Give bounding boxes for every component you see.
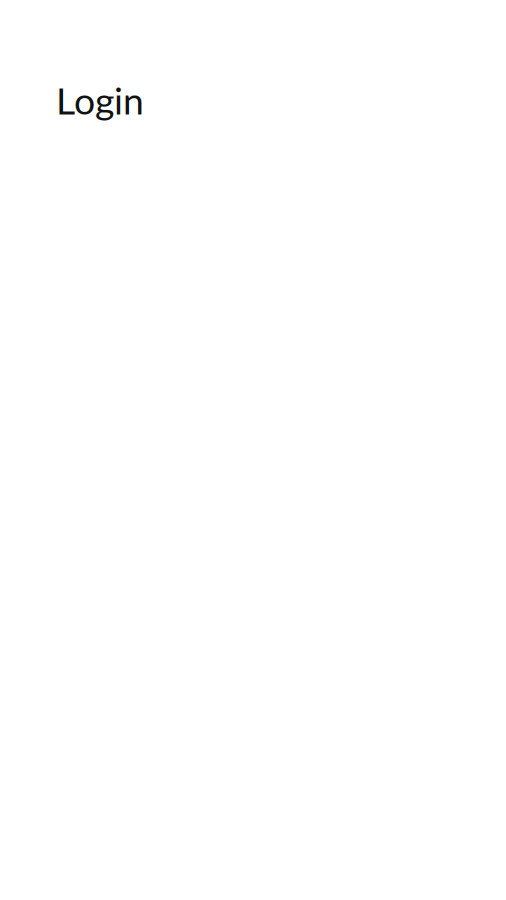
staticText: Login [56, 78, 144, 122]
